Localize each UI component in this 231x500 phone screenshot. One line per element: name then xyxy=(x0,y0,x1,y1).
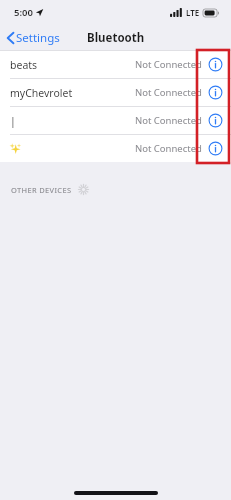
button[interactable]: More info xyxy=(208,57,223,72)
button[interactable]: | xyxy=(0,107,231,134)
staticText: myChevrolet xyxy=(10,86,73,100)
staticText: Not Connected xyxy=(135,114,202,127)
button[interactable]: Not Connected xyxy=(0,135,231,162)
staticText: Bluetooth xyxy=(87,30,145,46)
staticText: LTE xyxy=(186,7,200,18)
button[interactable]: Settings xyxy=(0,26,66,50)
button[interactable]: beats xyxy=(0,51,231,78)
staticText: Not Connected xyxy=(135,86,202,99)
staticText: | xyxy=(10,114,16,128)
button[interactable]: More info xyxy=(208,85,223,100)
button[interactable]: More info xyxy=(208,113,223,128)
staticText: beats xyxy=(10,58,38,72)
staticText: 5:00 xyxy=(14,6,33,19)
staticText: Settings xyxy=(16,30,60,46)
staticText: Not Connected xyxy=(135,142,202,155)
staticText: Not Connected xyxy=(135,58,202,71)
staticText: OTHER DEVICES xyxy=(11,185,72,195)
button[interactable]: myChevrolet xyxy=(0,79,231,106)
button[interactable]: More info xyxy=(208,141,223,156)
